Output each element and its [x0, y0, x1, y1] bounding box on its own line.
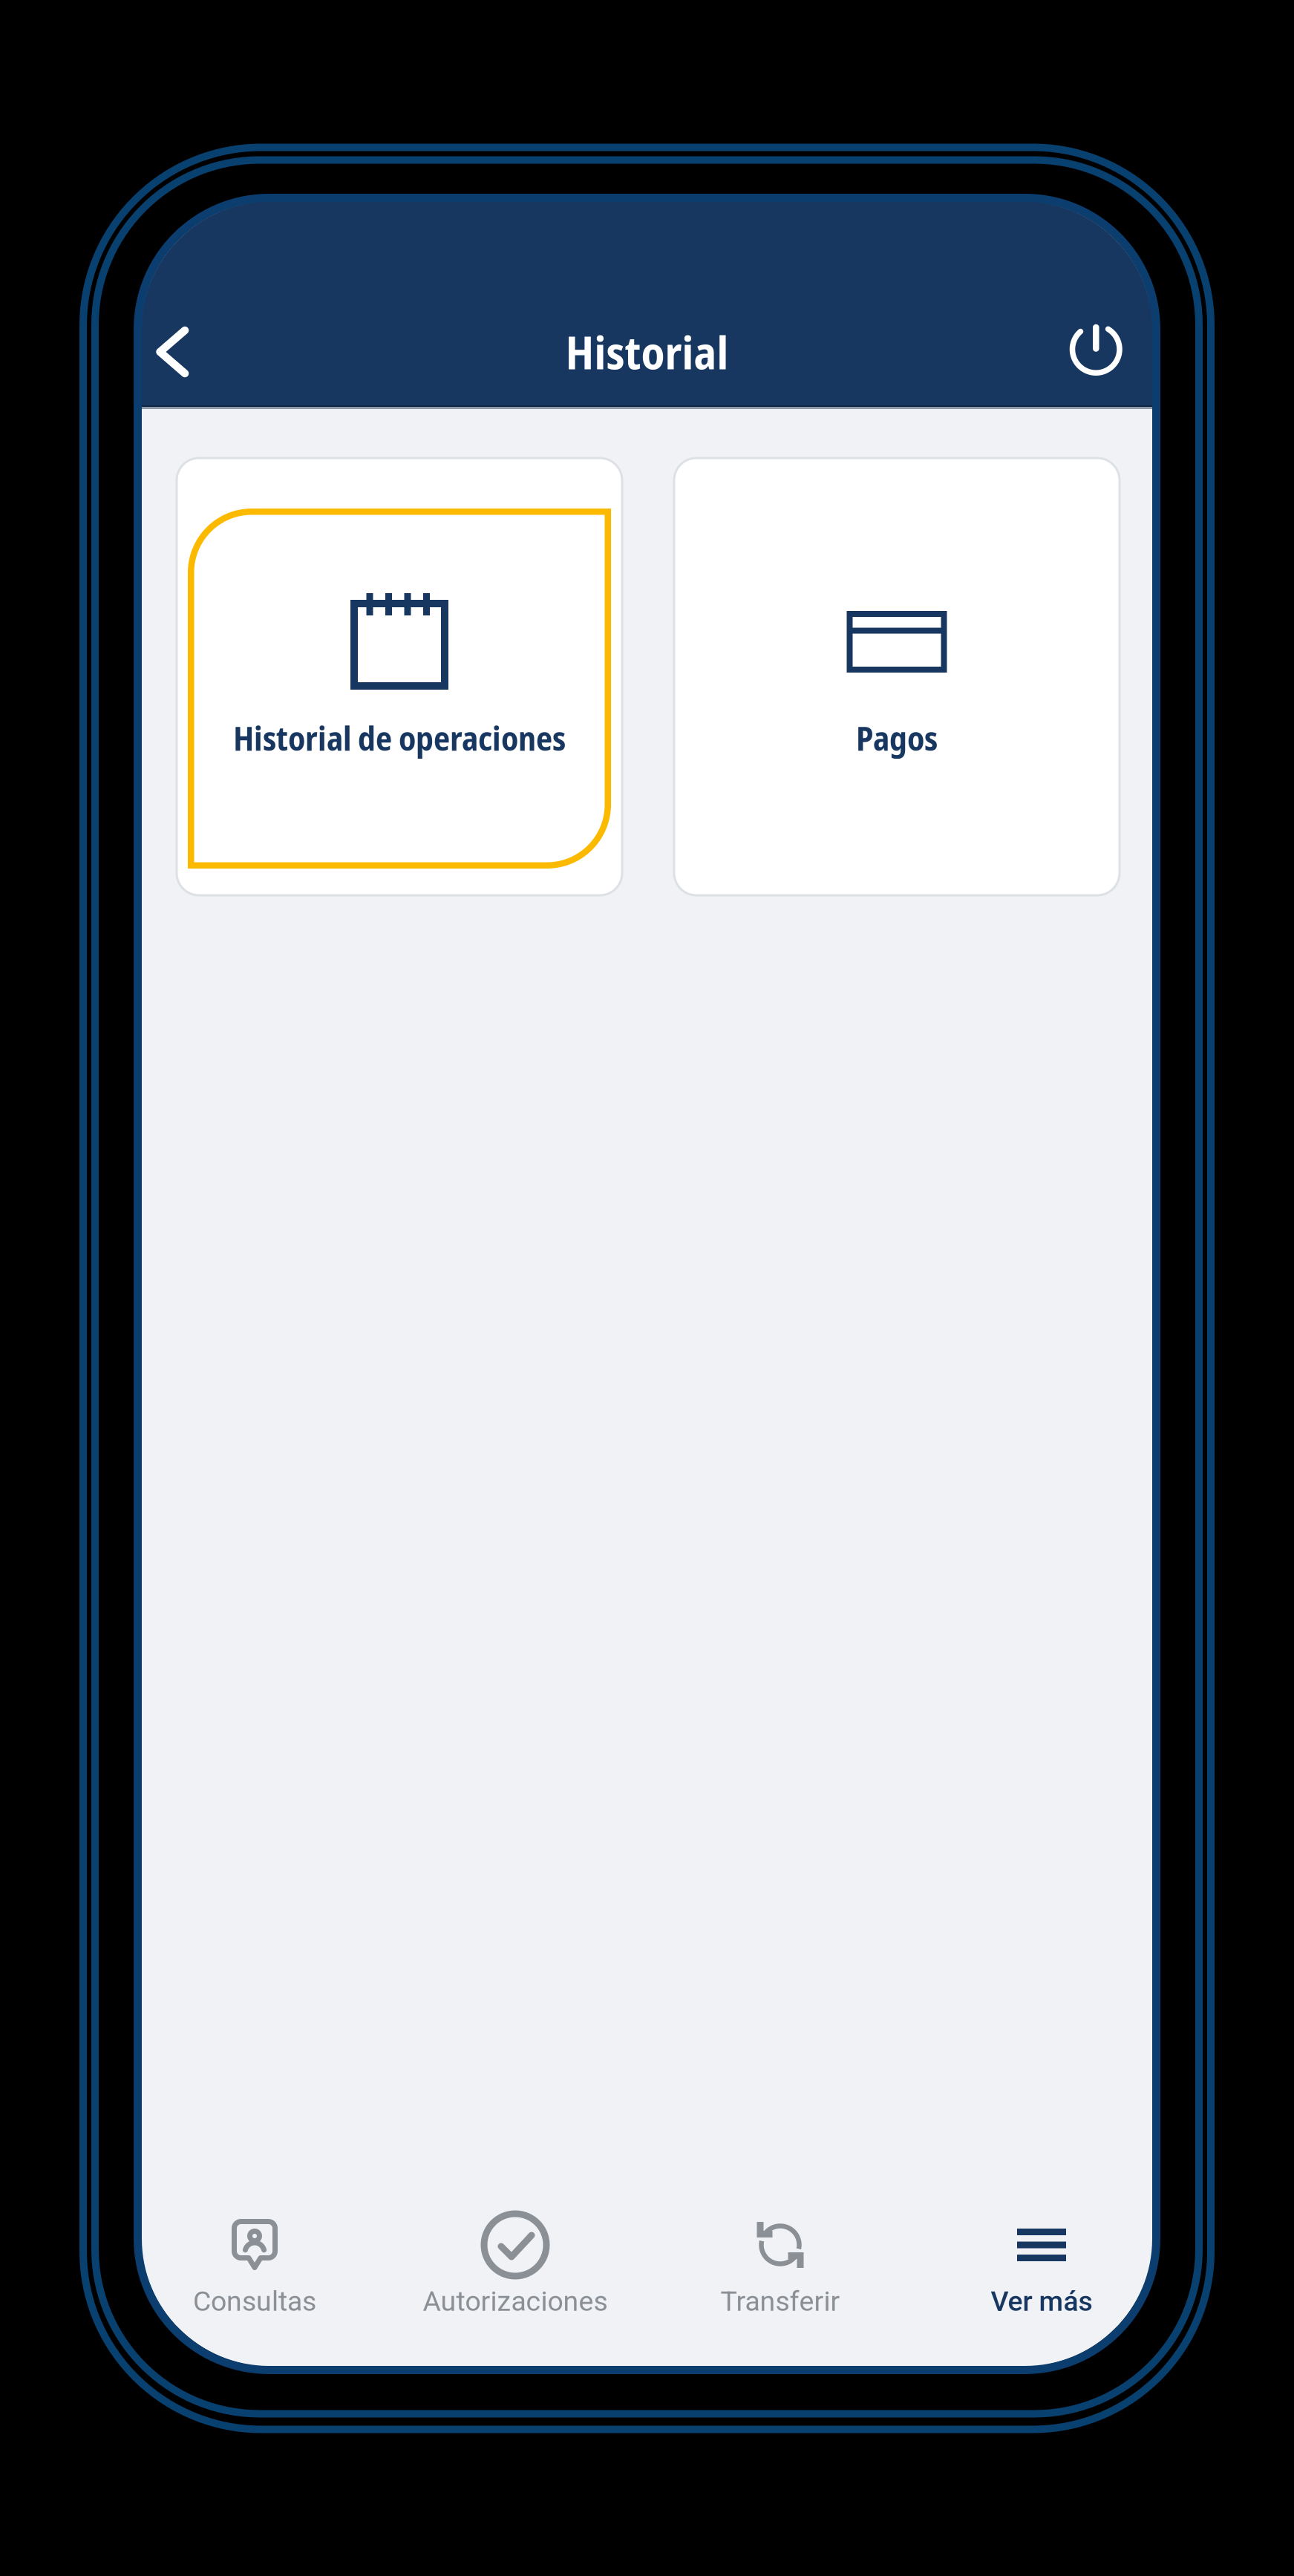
staticText: Transferir — [720, 2285, 840, 2318]
button[interactable]: Historial de operaciones — [177, 458, 622, 895]
button[interactable]: Transferir — [654, 2163, 906, 2327]
staticText: Pagos — [856, 716, 938, 760]
staticText: Consultas — [193, 2285, 316, 2318]
staticText: Ver más — [991, 2285, 1092, 2318]
button[interactable]: Autorizaciones — [389, 2163, 641, 2327]
staticText: Historial — [565, 321, 729, 383]
button[interactable]: Pagos — [674, 458, 1120, 895]
button[interactable]: Consultas — [128, 2163, 381, 2327]
button[interactable]: Ver más — [915, 2163, 1168, 2327]
button[interactable]: Back — [124, 304, 220, 400]
staticText: Autorizaciones — [423, 2285, 608, 2318]
button[interactable]: Log out — [1048, 303, 1144, 399]
staticText: Historial de operaciones — [233, 716, 566, 760]
